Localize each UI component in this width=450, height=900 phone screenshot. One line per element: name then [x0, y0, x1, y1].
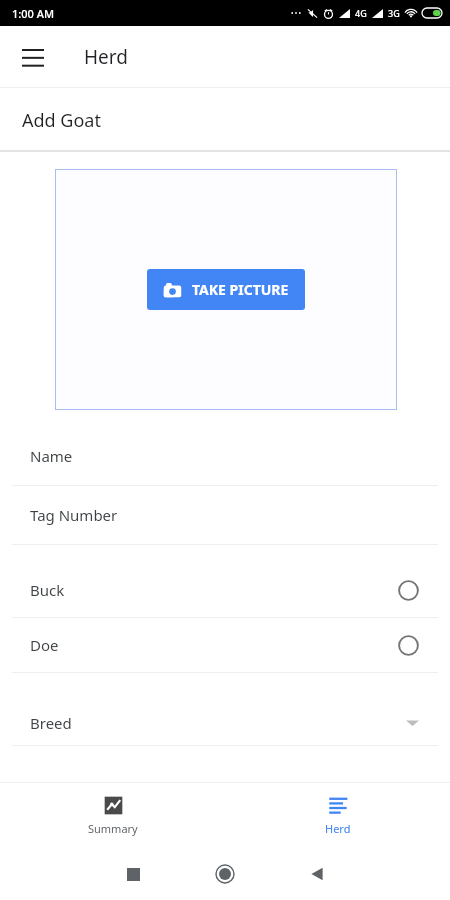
staticText: Breed [30, 713, 406, 733]
button[interactable]: Home [197, 848, 253, 900]
button[interactable]: Herd [225, 782, 450, 848]
staticText: Herd [84, 44, 128, 70]
staticText: Tag Number [30, 505, 118, 525]
button[interactable]: Recent apps [105, 848, 161, 900]
staticText: Herd [325, 821, 351, 836]
staticText: Buck [30, 580, 398, 600]
staticText: 3G [388, 7, 400, 19]
staticText: Name [30, 446, 73, 466]
staticText: Add Goat [22, 108, 101, 133]
button[interactable]: Summary [0, 782, 225, 848]
button[interactable]: Name [0, 427, 450, 486]
button[interactable]: Doe [0, 618, 450, 673]
staticText: TAKE PICTURE [192, 280, 289, 299]
button[interactable]: TAKE PICTURE [147, 269, 305, 310]
button[interactable]: Open navigation menu [12, 36, 54, 78]
button[interactable]: Tag Number [0, 486, 450, 545]
button[interactable]: Breed [0, 701, 450, 746]
button[interactable]: Back [289, 848, 345, 900]
staticText: 4G [355, 7, 367, 19]
staticText: Summary [88, 821, 138, 836]
staticText: 1:00 AM [12, 6, 55, 21]
staticText: Doe [30, 635, 398, 655]
button[interactable]: Buck [0, 563, 450, 618]
